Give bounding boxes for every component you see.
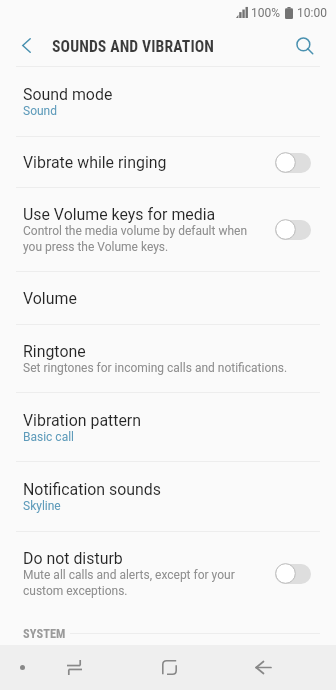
staticText: Sound mode [23,85,113,104]
button[interactable]: Search [274,25,336,66]
button[interactable]: Keyboard indicator [0,645,44,690]
staticText: Control the media volume by default when… [23,224,265,254]
staticText: 100% [251,6,281,20]
button[interactable]: Toggle off [275,152,311,173]
button[interactable]: Do not disturb [0,532,336,615]
button[interactable]: Vibrate while ringing [0,137,336,187]
button[interactable]: Back [241,645,286,690]
staticText: Vibrate while ringing [23,153,167,172]
button[interactable]: Recent apps [52,645,97,690]
staticText: Mute all calls and alerts, except for yo… [23,568,265,598]
staticText: SOUNDS AND VIBRATION [52,37,215,55]
button[interactable]: Notification sounds [0,462,336,531]
button[interactable]: Navigate up [0,25,52,66]
button[interactable]: Volume [0,272,336,324]
button[interactable]: Toggle off [275,219,311,240]
button[interactable]: Home [147,645,192,690]
button[interactable]: Toggle off [275,563,311,584]
staticText: 10:00 [297,6,327,20]
staticText: Sound [23,104,57,118]
staticText: Do not disturb [23,549,123,568]
staticText: Notification sounds [23,480,162,499]
staticText: Volume [23,289,77,308]
staticText: Skyline [23,499,61,513]
button[interactable]: Ringtone [0,325,336,392]
staticText: SYSTEM [23,627,66,641]
button[interactable]: Use Volume keys for media [0,188,336,271]
staticText: Set ringtones for incoming calls and not… [23,361,288,375]
button[interactable]: Sound mode [0,67,336,136]
button[interactable]: Vibration pattern [0,393,336,461]
staticText: Ringtone [23,342,86,361]
staticText: Basic call [23,430,75,444]
staticText: Vibration pattern [23,411,142,430]
staticText: Use Volume keys for media [23,205,216,224]
